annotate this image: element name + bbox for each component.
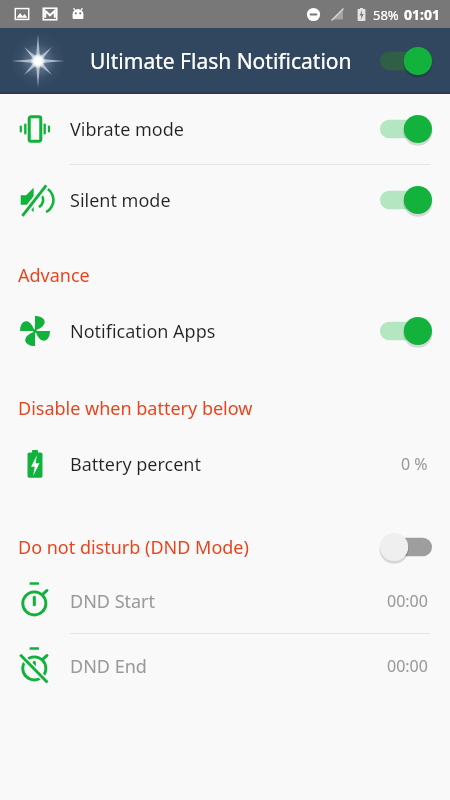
button[interactable]: Notification Apps toggle (376, 312, 436, 350)
staticText: 0 % (401, 453, 428, 475)
staticText: 01:01 (404, 5, 440, 24)
button[interactable]: Notification Apps (0, 294, 450, 368)
staticText: 00:00 (387, 655, 428, 677)
button[interactable]: Do not disturb toggle (376, 528, 436, 566)
button[interactable]: DND Start (0, 569, 450, 633)
staticText: Ultimate Flash Notification (90, 47, 352, 76)
staticText: Silent mode (70, 188, 171, 213)
staticText: Notification Apps (70, 319, 216, 344)
button[interactable]: Vibrate mode (0, 94, 450, 164)
staticText: 58% (373, 6, 399, 24)
button[interactable]: Battery percent (0, 427, 450, 501)
staticText: DND End (70, 654, 147, 679)
button[interactable]: DND End (0, 634, 450, 698)
staticText: Battery percent (70, 452, 201, 477)
staticText: DND Start (70, 589, 156, 614)
staticText: 00:00 (387, 590, 428, 612)
button[interactable]: Silent mode toggle (376, 181, 436, 219)
staticText: Disable when battery below (18, 396, 253, 421)
staticText: Advance (18, 263, 90, 288)
staticText: Do not disturb (DND Mode) (18, 535, 249, 560)
button[interactable]: Master enable toggle (376, 42, 436, 80)
staticText: Vibrate mode (70, 117, 184, 142)
button[interactable]: Vibrate mode toggle (376, 110, 436, 148)
button[interactable]: Silent mode (0, 165, 450, 235)
